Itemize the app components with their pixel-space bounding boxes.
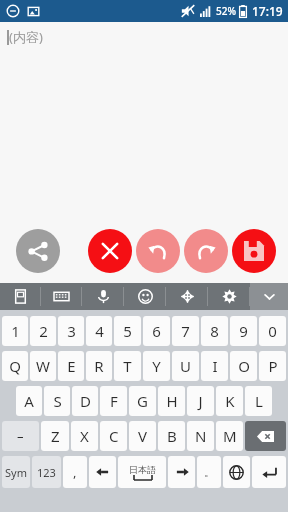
staticText: 9 <box>239 321 248 341</box>
staticText: – <box>17 427 24 445</box>
button[interactable]: 9 <box>230 316 257 346</box>
button[interactable]: J <box>187 386 214 416</box>
button[interactable]: X <box>71 421 98 451</box>
button[interactable]: M <box>216 421 243 451</box>
staticText: , <box>73 463 77 481</box>
staticText: T <box>123 356 132 376</box>
button[interactable]: 2 <box>30 316 56 346</box>
button[interactable]: emoji <box>124 283 166 310</box>
button[interactable]: 5 <box>114 316 141 346</box>
button[interactable]: U <box>172 351 199 381</box>
staticText: (内容) <box>9 28 43 46</box>
button[interactable]: Backspace <box>245 421 286 451</box>
button[interactable]: gear <box>208 283 250 310</box>
button[interactable]: Q <box>2 351 28 381</box>
button[interactable]: Space 日本語 <box>118 456 166 488</box>
button[interactable]: B <box>158 421 185 451</box>
button[interactable]: Cancel <box>88 229 132 273</box>
button[interactable]: Right <box>168 456 195 488</box>
staticText: Q <box>9 356 21 376</box>
button[interactable]: H <box>158 386 185 416</box>
button[interactable]: W <box>30 351 56 381</box>
staticText: 123 <box>37 465 56 480</box>
button[interactable]: 6 <box>143 316 170 346</box>
button[interactable]: 0 <box>259 316 286 346</box>
button[interactable]: D <box>72 386 98 416</box>
button[interactable]: Shift <box>2 421 39 451</box>
staticText: I <box>212 356 218 376</box>
button[interactable]: C <box>100 421 127 451</box>
button[interactable]: K <box>216 386 243 416</box>
staticText: M <box>223 426 237 446</box>
staticText: U <box>180 356 191 376</box>
button[interactable]: mic <box>82 283 124 310</box>
staticText: 7 <box>181 321 190 341</box>
button[interactable]: Z <box>41 421 69 451</box>
button[interactable]: Period <box>197 456 221 488</box>
staticText: F <box>110 391 118 411</box>
staticText: R <box>94 356 104 376</box>
button[interactable]: 3 <box>58 316 84 346</box>
button[interactable]: E <box>58 351 84 381</box>
button[interactable]: G <box>129 386 156 416</box>
button[interactable]: T <box>114 351 141 381</box>
button[interactable]: Sym <box>2 456 30 488</box>
staticText: E <box>67 356 76 376</box>
staticText: Y <box>152 356 161 376</box>
staticText: O <box>238 356 250 376</box>
button[interactable]: 8 <box>201 316 228 346</box>
button[interactable]: Redo <box>184 229 228 273</box>
button[interactable]: Language <box>223 456 250 488</box>
button[interactable]: Save <box>232 229 276 273</box>
staticText: 3 <box>67 321 76 341</box>
staticText: G <box>137 391 148 411</box>
button[interactable]: O <box>230 351 257 381</box>
button[interactable]: Comma <box>63 456 87 488</box>
staticText: Z <box>51 426 60 446</box>
button[interactable]: 1 <box>2 316 28 346</box>
button[interactable]: F <box>100 386 127 416</box>
staticText: Sym <box>5 465 27 480</box>
button[interactable]: Y <box>143 351 170 381</box>
staticText: A <box>24 391 34 411</box>
staticText: P <box>268 356 278 376</box>
staticText: L <box>255 391 263 411</box>
button[interactable]: N <box>187 421 214 451</box>
staticText: S <box>53 391 62 411</box>
button[interactable]: Share <box>16 229 60 273</box>
staticText: 日本語 <box>129 464 156 475</box>
staticText: 8 <box>210 321 219 341</box>
button[interactable]: Undo <box>136 229 180 273</box>
staticText: 52% <box>216 4 236 18</box>
staticText: H <box>166 391 178 411</box>
button[interactable]: 7 <box>172 316 199 346</box>
button[interactable]: 4 <box>86 316 112 346</box>
staticText: 1 <box>11 321 20 341</box>
staticText: 4 <box>95 321 104 341</box>
button[interactable]: L <box>245 386 272 416</box>
staticText: 0 <box>268 321 277 341</box>
button[interactable]: A <box>16 386 42 416</box>
button[interactable]: move <box>166 283 208 310</box>
staticText: 。 <box>204 465 215 479</box>
button[interactable]: Left <box>89 456 116 488</box>
staticText: V <box>138 426 148 446</box>
button[interactable]: R <box>86 351 112 381</box>
staticText: N <box>195 426 207 446</box>
button[interactable]: (内容) <box>0 22 288 283</box>
button[interactable]: P <box>259 351 286 381</box>
button[interactable]: V <box>129 421 156 451</box>
button[interactable]: Hide keyboard <box>250 283 288 310</box>
button[interactable]: clip <box>0 283 41 310</box>
staticText: 6 <box>152 321 161 341</box>
staticText: X <box>80 426 89 446</box>
button[interactable]: 123 <box>32 456 61 488</box>
button[interactable]: Enter <box>252 456 286 488</box>
button[interactable]: S <box>44 386 70 416</box>
button[interactable]: kbd <box>41 283 82 310</box>
button[interactable]: I <box>201 351 228 381</box>
staticText: 17:19 <box>252 3 283 19</box>
staticText: W <box>36 356 50 376</box>
staticText: J <box>198 391 203 411</box>
staticText: 5 <box>123 321 132 341</box>
